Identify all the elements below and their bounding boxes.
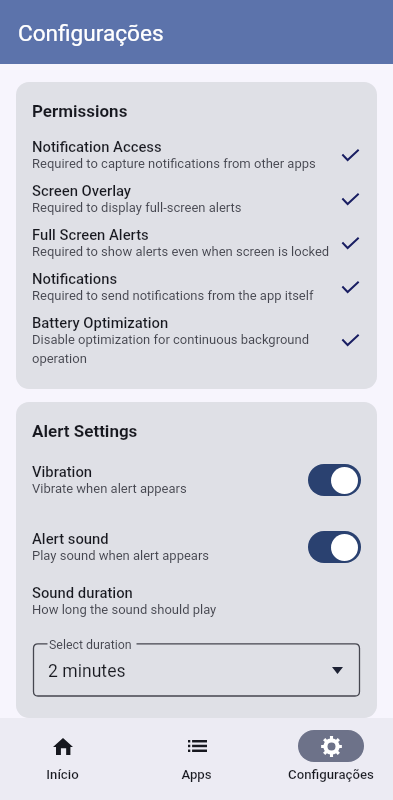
staticText: Notification Access [32,138,162,155]
staticText: Configurações [288,767,374,782]
staticText: Required to send notifications from the … [32,288,314,303]
button[interactable]: Screen Overlay [32,182,361,215]
button[interactable]: Battery Optimization [32,314,361,366]
staticText: Alert sound [32,530,109,547]
other: Granted [339,230,361,256]
staticText: Play sound when alert appears [32,548,210,563]
other: Home [30,730,96,762]
staticText: Battery Optimization [32,314,169,331]
staticText: Início [46,767,79,782]
button[interactable]: Notification Access [32,138,361,171]
button[interactable]: Settings [265,718,393,800]
staticText: Vibrate when alert appears [32,481,187,496]
staticText: Sound duration [32,584,133,601]
button[interactable]: Vibration [32,463,361,496]
other: Granted [339,327,361,353]
other: Granted [339,142,361,168]
staticText: Notifications [32,270,118,287]
staticText: Disable optimization for continuous back… [32,332,335,366]
other: Apps [164,730,230,762]
button[interactable]: Alert sound [32,530,361,563]
button[interactable]: Select duration, 2 minutes [32,636,361,696]
staticText: Required to capture notifications from o… [32,156,316,171]
other: Granted [339,274,361,300]
staticText: Alert Settings [32,421,138,441]
staticText: Full Screen Alerts [32,226,149,243]
staticText: Required to display full-screen alerts [32,200,242,215]
other: Toggle Alert sound [308,531,361,563]
button[interactable]: Notifications [32,270,361,303]
staticText: Select duration [49,637,132,652]
other: Toggle Vibration [308,464,361,496]
button[interactable]: Home [0,718,128,800]
other: Granted [339,186,361,212]
staticText: Required to show alerts even when screen… [32,244,330,259]
staticText: 2 minutes [48,661,126,682]
staticText: Vibration [32,463,93,480]
staticText: How long the sound should play [32,602,217,617]
staticText: Permissions [32,101,128,121]
button[interactable]: Full Screen Alerts [32,226,361,259]
other: Settings [298,730,364,762]
staticText: Configurações [18,20,164,46]
button[interactable]: Apps [131,718,262,800]
staticText: Screen Overlay [32,182,132,199]
staticText: Apps [181,767,212,782]
